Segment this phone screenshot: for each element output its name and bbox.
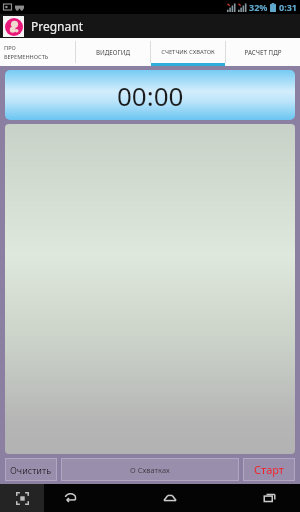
staticText: Очистить [10, 464, 52, 476]
staticText: ВИДЕОГИД [80, 48, 146, 56]
button[interactable]: О Схватках [61, 458, 239, 481]
button[interactable]: СЧЕТЧИК СХВАТОК [151, 38, 225, 66]
staticText: 32% [249, 1, 268, 13]
button[interactable]: App icon [3, 16, 24, 37]
button[interactable]: 00:00 [5, 70, 295, 120]
button[interactable]: Contractions list [5, 124, 295, 454]
staticText: 00:00 [117, 78, 184, 113]
staticText: РАСЧЕТ ПДР [230, 48, 296, 56]
button[interactable]: Очистить [5, 458, 57, 481]
staticText: 0:31 [279, 1, 297, 13]
button[interactable]: Home [150, 484, 190, 512]
staticText: СЧЕТЧИК СХВАТОК [155, 48, 221, 56]
staticText: ПРО БЕРЕМЕННОСТЬ [4, 44, 71, 60]
staticText: Pregnant [31, 18, 84, 34]
button[interactable]: Recents [250, 484, 290, 512]
staticText: О Схватках [130, 465, 170, 475]
button[interactable]: Screenshot [0, 484, 44, 512]
button[interactable]: Старт [243, 458, 295, 481]
staticText: Старт [254, 462, 284, 477]
button[interactable]: ВИДЕОГИД [76, 38, 150, 66]
button[interactable]: РАСЧЕТ ПДР [226, 38, 300, 66]
button[interactable]: ПРО БЕРЕМЕННОСТЬ [0, 38, 75, 66]
button[interactable]: Back [50, 484, 90, 512]
